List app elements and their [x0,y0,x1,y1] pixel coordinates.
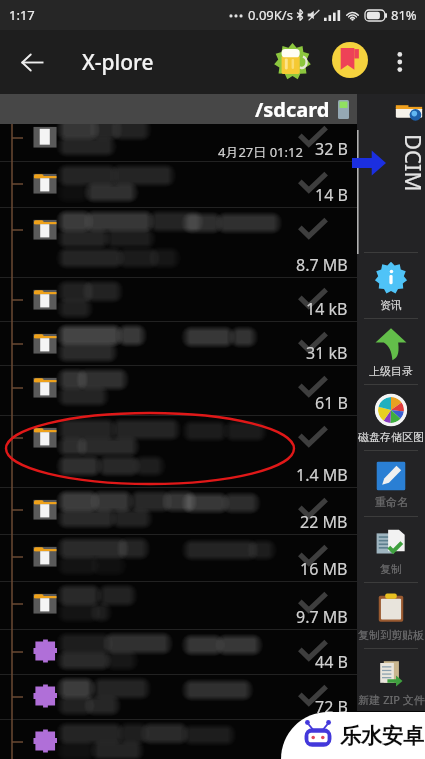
staticText: 复制到剪贴板 [358,628,424,642]
button[interactable]: 72 B [0,675,357,720]
staticText: 1:17 [9,6,35,24]
button[interactable]: 1.4 MB [0,416,357,488]
button[interactable]: 重命名 [357,451,425,516]
staticText: /sdcard [255,96,330,123]
staticText: 乐水安卓网 [340,723,425,749]
staticText: 0.09K/s [248,6,293,24]
staticText: 8.7 MB [296,254,348,276]
button[interactable]: 新建 ZIP 文件 [357,649,425,711]
button[interactable]: Bookmarks [329,39,371,81]
button[interactable]: 61 B [0,366,357,416]
staticText: 磁盘存储区图 [358,430,424,444]
button[interactable] [0,720,357,759]
staticText: 资讯 [380,298,402,312]
staticText: 重命名 [375,495,408,509]
button[interactable]: 22 MB [0,488,357,535]
button[interactable]: 16 MB [0,535,357,582]
staticText: 81% [391,6,417,24]
staticText: 上级目录 [369,364,413,378]
staticText: 复制 [380,562,402,576]
button[interactable]: 8.7 MB [0,208,357,278]
button[interactable]: 磁盘存储区图 [357,385,425,450]
staticText: 9.7 MB [296,606,348,628]
staticText: 22 MB [300,511,348,533]
staticText: 14 kB [306,298,348,320]
button[interactable]: 31 kB [0,322,357,366]
staticText: 31 kB [306,342,348,364]
staticText: 1.4 MB [296,464,348,486]
staticText: 32 B [315,138,348,160]
button[interactable]: 4月27日 01:12 [0,116,357,162]
button[interactable]: More options [380,42,420,82]
button[interactable]: 9.7 MB [0,582,357,630]
button[interactable]: 上级目录 [357,319,425,384]
button[interactable]: 14 kB [0,278,357,322]
staticText: 14 B [315,184,348,206]
button[interactable]: 14 B [0,162,357,208]
staticText: X-plore [82,48,154,77]
button[interactable]: /sdcard [0,94,357,124]
staticText: 61 B [315,392,348,414]
button[interactable]: 资讯 [357,253,425,318]
staticText: 44 B [315,651,348,673]
button[interactable]: 44 B [0,630,357,675]
button[interactable]: Back [8,38,56,86]
staticText: DCIM [399,134,425,192]
button[interactable]: 复制 [357,517,425,582]
button[interactable]: 复制到剪贴板 [357,583,425,648]
staticText: 新建 ZIP 文件 [358,692,425,707]
button[interactable]: Donate [270,39,315,84]
staticText: 72 B [315,696,348,718]
button[interactable]: Watermark [281,712,425,759]
staticText: 16 MB [300,558,348,580]
staticText: 4月27日 01:12 [218,143,303,161]
